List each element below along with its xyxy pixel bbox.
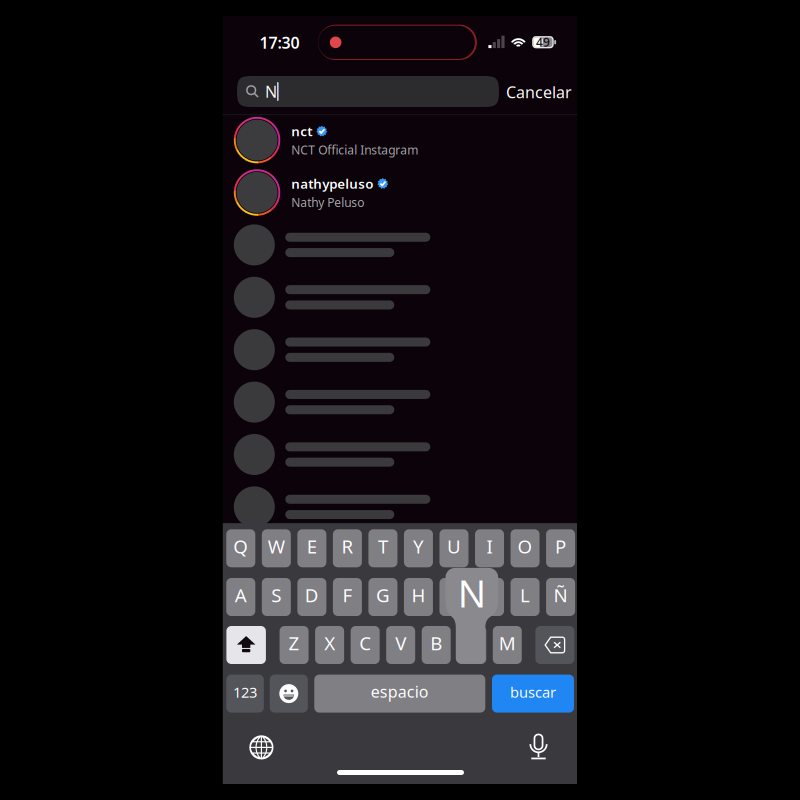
button[interactable]: buscar xyxy=(492,675,574,713)
button[interactable]: A xyxy=(226,578,255,616)
staticText: 17:30 xyxy=(260,32,300,53)
button[interactable]: O xyxy=(510,529,539,567)
button[interactable]: N xyxy=(457,626,486,664)
staticText: A xyxy=(235,583,247,607)
button[interactable]: Y xyxy=(404,529,433,567)
button[interactable]: Dictation xyxy=(529,733,547,760)
button[interactable]: T xyxy=(368,529,397,567)
staticText: Y xyxy=(413,534,424,559)
staticText: buscar xyxy=(510,682,556,702)
button[interactable]: X xyxy=(315,626,344,664)
staticText: T xyxy=(378,534,388,559)
staticText: F xyxy=(342,583,352,607)
button[interactable]: Next keyboard xyxy=(249,735,274,760)
button[interactable]: Q xyxy=(226,529,255,567)
button[interactable]: nathypeluso xyxy=(234,166,568,219)
staticText: C xyxy=(359,631,371,655)
button[interactable]: Z xyxy=(280,626,309,664)
button[interactable]: H xyxy=(404,578,433,616)
staticText: I xyxy=(486,534,492,559)
button[interactable]: I xyxy=(475,529,504,567)
staticText: P xyxy=(555,534,566,559)
button[interactable]: Cancelar xyxy=(501,77,577,107)
button[interactable]: J xyxy=(439,578,468,616)
button[interactable]: U xyxy=(439,529,468,567)
button[interactable]: Ñ xyxy=(546,578,575,616)
button[interactable]: Emoji xyxy=(270,675,308,713)
button[interactable]: Delete xyxy=(535,626,574,664)
button[interactable]: R xyxy=(333,529,362,567)
staticText: M xyxy=(499,631,516,655)
button[interactable]: 123 xyxy=(226,675,264,713)
staticText: N xyxy=(458,568,486,618)
button[interactable]: P xyxy=(546,529,575,567)
staticText: Cancelar xyxy=(506,81,572,103)
button[interactable]: B xyxy=(422,626,451,664)
staticText: R xyxy=(341,534,353,559)
staticText: V xyxy=(395,631,406,655)
button[interactable]: F xyxy=(333,578,362,616)
button[interactable]: nct xyxy=(234,114,568,166)
button[interactable]: espacio xyxy=(314,675,485,713)
button[interactable]: K xyxy=(475,578,504,616)
staticText: B xyxy=(430,631,442,655)
staticText: U xyxy=(447,534,461,559)
staticText: 49 xyxy=(536,34,550,50)
staticText: E xyxy=(307,534,317,559)
button[interactable]: Shift xyxy=(226,626,266,664)
button[interactable]: D xyxy=(297,578,326,616)
button[interactable]: M xyxy=(493,626,522,664)
staticText: nathypeluso xyxy=(291,175,373,192)
staticText: nct xyxy=(291,122,312,140)
staticText: N xyxy=(265,81,277,102)
button[interactable]: E xyxy=(297,529,326,567)
staticText: O xyxy=(517,534,532,559)
button[interactable]: W xyxy=(262,529,291,567)
staticText: S xyxy=(271,583,281,607)
staticText: Nathy Peluso xyxy=(291,194,364,210)
button[interactable]: G xyxy=(368,578,397,616)
staticText: W xyxy=(268,534,285,559)
staticText: Ñ xyxy=(554,583,568,607)
button[interactable]: C xyxy=(351,626,380,664)
staticText: H xyxy=(411,583,425,607)
staticText: espacio xyxy=(371,681,429,702)
staticText: Z xyxy=(289,631,300,655)
staticText: Q xyxy=(233,534,248,559)
staticText: L xyxy=(520,583,530,607)
staticText: X xyxy=(324,631,335,655)
button[interactable]: L xyxy=(510,578,539,616)
staticText: NCT Official Instagram xyxy=(291,142,418,158)
button[interactable]: S xyxy=(262,578,291,616)
staticText: G xyxy=(376,583,390,607)
staticText: 123 xyxy=(233,682,257,702)
staticText: D xyxy=(305,583,319,607)
button[interactable]: V xyxy=(386,626,415,664)
